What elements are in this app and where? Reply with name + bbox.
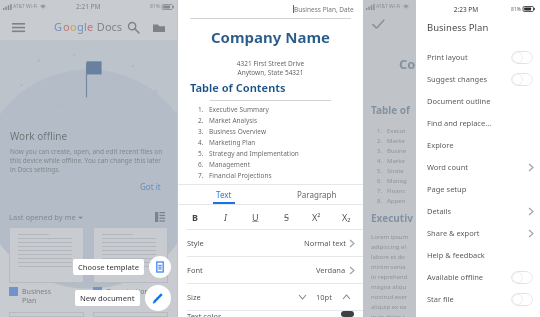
button[interactable]: Style bbox=[187, 230, 354, 256]
button[interactable]: Text color bbox=[187, 311, 354, 317]
staticText: 7. bbox=[377, 187, 383, 195]
staticText: New document bbox=[80, 293, 135, 303]
button[interactable]: Search bbox=[123, 17, 143, 37]
staticText: Table of bbox=[371, 103, 410, 117]
button[interactable]: Share & export bbox=[427, 222, 533, 244]
staticText: I bbox=[224, 211, 227, 223]
staticText: 4. bbox=[198, 138, 204, 147]
staticText: 2. bbox=[198, 116, 204, 125]
staticText: U bbox=[252, 211, 259, 223]
button[interactable]: Suggest changes bbox=[427, 68, 533, 90]
button[interactable]: Folders bbox=[149, 17, 169, 37]
button[interactable]: B bbox=[185, 208, 205, 226]
staticText: 4321 First Street Drive bbox=[178, 59, 363, 68]
staticText: Explore bbox=[427, 140, 454, 150]
staticText: adipiscing el bbox=[371, 243, 407, 251]
button[interactable]: Available offline bbox=[427, 266, 533, 288]
staticText: B bbox=[192, 211, 198, 223]
button[interactable]: Details bbox=[427, 200, 533, 222]
button[interactable]: New document bbox=[75, 285, 171, 311]
staticText: Text bbox=[216, 189, 232, 200]
staticText: Print layout bbox=[427, 52, 468, 62]
button[interactable]: Find and replace... bbox=[427, 112, 533, 134]
button[interactable]: S bbox=[276, 208, 296, 226]
staticText: Manag bbox=[387, 177, 407, 185]
staticText: 8. bbox=[377, 197, 383, 205]
staticText: l bbox=[84, 19, 87, 34]
button[interactable]: Word count bbox=[427, 156, 533, 178]
staticText: Last opened by me bbox=[9, 212, 76, 222]
button[interactable]: Print layout bbox=[427, 46, 533, 68]
staticText: in reprehend bbox=[371, 273, 408, 281]
button[interactable]: X² bbox=[306, 208, 326, 226]
button[interactable]: Got it bbox=[134, 179, 167, 194]
staticText: 10pt bbox=[316, 292, 332, 302]
staticText: AT&T Wi-Fi bbox=[13, 3, 38, 10]
staticText: Table of Contents bbox=[190, 80, 286, 95]
button[interactable]: Decrease size bbox=[294, 289, 310, 305]
button[interactable]: List view bbox=[152, 209, 168, 225]
staticText: minim venia bbox=[371, 263, 406, 271]
staticText: Business Overview bbox=[209, 127, 266, 136]
button[interactable]: Choose template bbox=[73, 256, 171, 278]
staticText: 2:21 PM bbox=[76, 2, 101, 11]
button[interactable]: I bbox=[215, 208, 235, 226]
button[interactable]: Star file bbox=[427, 288, 533, 310]
button[interactable]: Text bbox=[178, 185, 270, 204]
staticText: Business Plan bbox=[427, 21, 489, 34]
staticText: 3. bbox=[377, 147, 383, 155]
staticText: Normal text bbox=[304, 238, 346, 248]
button[interactable]: Last opened by me bbox=[9, 212, 83, 222]
staticText: AT&T Wi-Fi bbox=[376, 3, 401, 10]
button[interactable] bbox=[93, 312, 168, 317]
staticText: Anytown, State 54321 bbox=[178, 68, 363, 77]
button[interactable]: Font bbox=[187, 257, 354, 283]
button[interactable]: Menu bbox=[8, 17, 28, 37]
staticText: Text color bbox=[187, 311, 222, 317]
button[interactable]: Paragraph bbox=[270, 185, 363, 204]
staticText: Available offline bbox=[427, 272, 484, 282]
staticText: Help & feedback bbox=[427, 250, 485, 260]
button[interactable]: Document outline bbox=[427, 90, 533, 112]
staticText: Lorem ipsum bbox=[371, 233, 409, 241]
staticText: magna aliqu bbox=[371, 283, 407, 291]
staticText: Marketing Plan bbox=[209, 138, 256, 147]
staticText: 4. bbox=[377, 157, 383, 165]
staticText: nostrud exer bbox=[371, 293, 407, 301]
staticText: Share & export bbox=[427, 228, 480, 238]
staticText: o bbox=[63, 19, 70, 34]
button[interactable]: U bbox=[245, 208, 265, 226]
staticText: 81% bbox=[511, 6, 521, 13]
staticText: Docs bbox=[94, 19, 123, 34]
staticText: irure dolor i bbox=[371, 313, 405, 317]
staticText: Paragraph bbox=[297, 189, 337, 200]
staticText: Management bbox=[209, 160, 250, 169]
staticText: Appen bbox=[387, 197, 406, 205]
button[interactable]: Business Plan bbox=[9, 227, 84, 305]
staticText: 81% bbox=[150, 3, 160, 10]
staticText: Work offline bbox=[10, 129, 68, 143]
button[interactable]: X₂ bbox=[336, 208, 356, 226]
staticText: Details bbox=[427, 206, 452, 216]
staticText: Busine bbox=[387, 147, 407, 155]
staticText: Word count bbox=[427, 162, 468, 172]
staticText: 5. bbox=[198, 149, 204, 158]
button[interactable]: Organizational chart bbox=[93, 227, 168, 305]
staticText: Organizational chart bbox=[106, 287, 155, 305]
staticText: e bbox=[87, 19, 94, 34]
staticText: Document outline bbox=[427, 96, 491, 106]
staticText: 2:23 PM bbox=[439, 2, 464, 11]
staticText: Marke bbox=[387, 157, 405, 165]
staticText: 6. bbox=[198, 160, 204, 169]
button[interactable]: Explore bbox=[427, 134, 533, 156]
button[interactable] bbox=[9, 312, 84, 317]
staticText: 6. bbox=[377, 177, 383, 185]
button[interactable]: Increase size bbox=[338, 289, 354, 305]
staticText: Marke bbox=[387, 137, 405, 145]
staticText: g bbox=[77, 19, 84, 34]
button[interactable]: Page setup bbox=[427, 178, 533, 200]
staticText: Style bbox=[187, 238, 204, 248]
staticText: 3. bbox=[198, 127, 204, 136]
button[interactable]: Help & feedback bbox=[427, 244, 533, 266]
staticText: Suggest changes bbox=[427, 74, 487, 84]
